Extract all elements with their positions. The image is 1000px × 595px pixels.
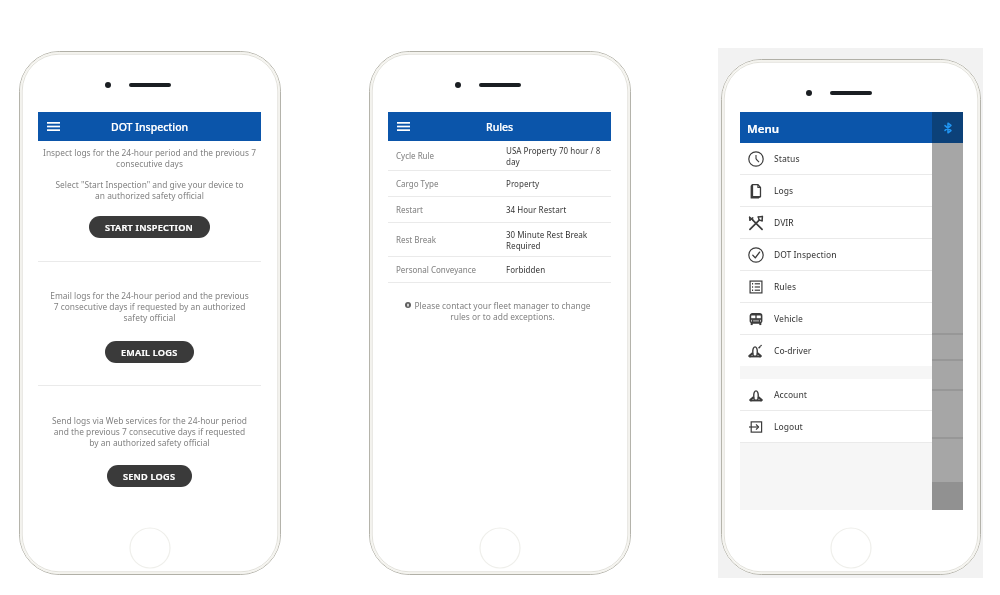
staticText: Co-driver <box>774 345 812 357</box>
staticText: Personal Conveyance <box>396 264 477 275</box>
staticText: Menu <box>747 121 780 137</box>
button[interactable]: DVIR <box>740 207 932 238</box>
staticText: Send logs via Web services for the 24-ho… <box>42 415 257 448</box>
button[interactable]: DOT Inspection <box>740 239 932 270</box>
button[interactable]: Rules <box>740 271 932 302</box>
staticText: EMAIL LOGS <box>121 346 178 359</box>
staticText: Logout <box>774 421 803 433</box>
staticText: Rules <box>486 120 514 134</box>
button[interactable]: SEND LOGS <box>107 465 192 487</box>
staticText: DVIR <box>774 217 794 229</box>
button[interactable]: Open navigation menu <box>38 112 68 141</box>
button[interactable]: Personal Conveyance <box>388 257 611 282</box>
staticText: Cargo Type <box>396 178 439 189</box>
button[interactable]: Logout <box>740 411 932 442</box>
staticText: Forbidden <box>506 264 546 275</box>
staticText: Rest Break <box>396 234 436 245</box>
staticText: DOT Inspection <box>111 120 189 134</box>
staticText: Please contact your fleet manager to cha… <box>414 300 591 322</box>
button[interactable]: START INSPECTION <box>89 216 210 238</box>
staticText: Select "Start Inspection" and give your … <box>42 179 257 201</box>
staticText: Rules <box>774 281 797 293</box>
button[interactable]: Rest Break <box>388 223 611 256</box>
button[interactable]: Logs <box>740 175 932 206</box>
staticText: START INSPECTION <box>105 221 194 234</box>
staticText: Inspect logs for the 24-hour period and … <box>42 147 257 169</box>
staticText: 30 Minute Rest Break Required <box>506 229 603 251</box>
button[interactable]: Co-driver <box>740 335 932 366</box>
staticText: Logs <box>774 185 794 197</box>
button[interactable]: Cargo Type <box>388 171 611 196</box>
staticText: Vehicle <box>774 313 803 325</box>
staticText: Status <box>774 153 800 165</box>
staticText: 34 Hour Restart <box>506 204 567 215</box>
staticText: Cycle Rule <box>396 150 435 161</box>
button[interactable]: Restart <box>388 197 611 222</box>
staticText: SEND LOGS <box>123 470 176 483</box>
staticText: DOT Inspection <box>774 249 837 261</box>
button[interactable]: Vehicle <box>740 303 932 334</box>
staticText: Account <box>774 389 808 401</box>
button[interactable]: Cycle Rule <box>388 141 611 170</box>
staticText: Property <box>506 178 540 189</box>
button[interactable]: Open navigation menu <box>388 112 418 141</box>
button[interactable]: Account <box>740 379 932 410</box>
button[interactable]: EMAIL LOGS <box>105 341 194 363</box>
staticText: Restart <box>396 204 423 215</box>
staticText: USA Property 70 hour / 8 day <box>506 145 603 167</box>
button[interactable]: Status <box>740 143 932 174</box>
staticText: Email logs for the 24-hour period and th… <box>42 290 257 323</box>
